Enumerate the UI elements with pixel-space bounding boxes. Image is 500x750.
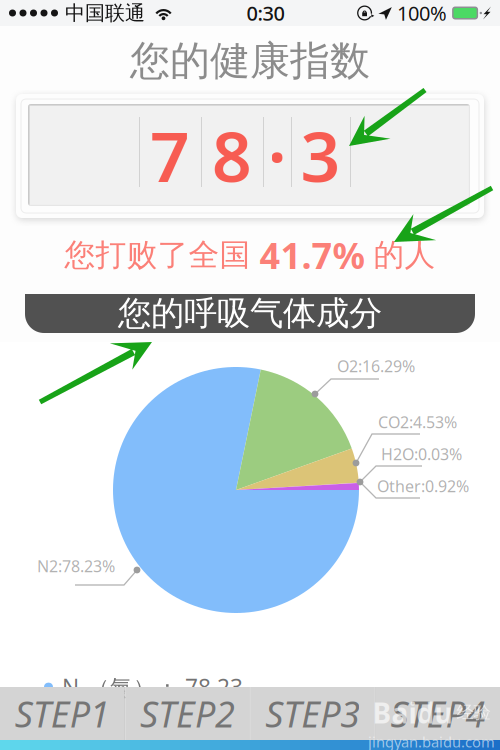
staticText: N2:78.23%: [37, 555, 115, 577]
staticText: 8: [212, 109, 252, 201]
staticText: 100%: [397, 0, 447, 26]
button[interactable]: STEP2: [125, 687, 249, 740]
staticText: 3: [300, 109, 340, 201]
button[interactable]: STEP4: [376, 687, 500, 740]
staticText: 7: [150, 109, 190, 201]
staticText: jingyan.baidu.com: [368, 732, 495, 750]
staticText: 经验: [456, 702, 490, 723]
staticText: STEP4: [390, 690, 485, 737]
staticText: STEP3: [265, 690, 360, 737]
staticText: STEP2: [140, 690, 235, 737]
staticText: H2O:0.03%: [381, 443, 462, 465]
staticText: CO2:4.53%: [378, 411, 457, 433]
staticText: Baidu: [372, 694, 452, 731]
staticText: 的人: [364, 236, 435, 274]
staticText: 您的呼吸气体成分: [118, 293, 382, 334]
button[interactable]: STEP3: [250, 687, 375, 740]
button[interactable]: STEP1: [0, 687, 124, 740]
staticText: O2:16.29%: [337, 355, 415, 377]
staticText: 中国联通: [65, 1, 145, 25]
staticText: ·: [267, 109, 286, 201]
staticText: N₂（氮）： 78.23: [62, 672, 243, 702]
staticText: 您的健康指数: [130, 36, 370, 85]
staticText: Other:0.92%: [377, 475, 469, 497]
staticText: 0:30: [247, 0, 285, 26]
staticText: 您打败了全国: [64, 236, 259, 274]
staticText: 41.7%: [259, 231, 364, 279]
staticText: STEP1: [15, 690, 110, 737]
